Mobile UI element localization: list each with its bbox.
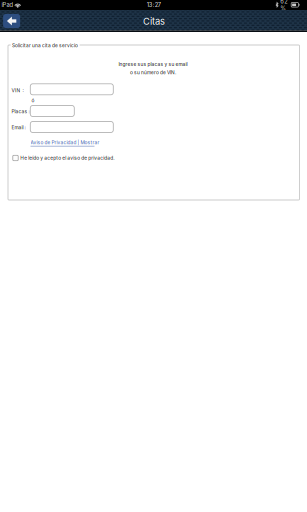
staticText: ó xyxy=(31,98,34,103)
staticText: Solicitar una cita de servicio xyxy=(12,42,78,48)
staticText: He leído y acepto el aviso de privacidad… xyxy=(20,155,114,161)
staticText: Citas xyxy=(143,16,165,27)
staticText: 62% xyxy=(280,0,287,12)
staticText: VIN : xyxy=(11,87,23,93)
button[interactable]: He leído y acepto el aviso de privacidad… xyxy=(13,155,114,161)
staticText: Ingrese sus placas y su email xyxy=(118,61,187,67)
staticText: o su número de VIN. xyxy=(130,70,176,75)
button[interactable]: Aviso de Privacidad | Mostrar xyxy=(30,140,99,146)
staticText: Aviso de Privacidad | Mostrar xyxy=(30,140,99,145)
staticText: iPad xyxy=(1,1,13,8)
staticText: 13:27 xyxy=(147,1,161,8)
button[interactable]: Back xyxy=(1,12,22,30)
staticText: Email : xyxy=(11,125,25,130)
staticText: Placas : xyxy=(11,109,29,114)
